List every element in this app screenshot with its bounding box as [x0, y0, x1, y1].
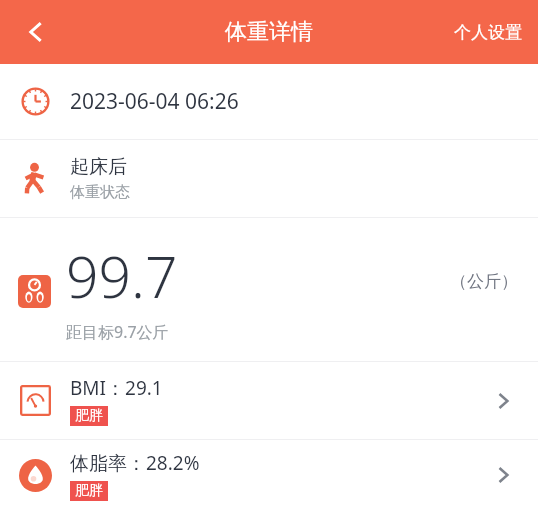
staticText: 体重状态	[70, 183, 130, 202]
staticText: 肥胖	[75, 407, 103, 425]
button[interactable]: 2023-06-04 06:26	[0, 64, 538, 139]
staticText: 体脂率：28.2%	[70, 450, 200, 476]
staticText: 距目标9.7公斤	[66, 321, 169, 343]
staticText: BMI：29.1	[70, 375, 163, 401]
button[interactable]: 起床后	[0, 140, 538, 217]
staticText: 99.7	[66, 237, 178, 315]
button[interactable]: Back	[8, 4, 64, 60]
staticText: 个人设置	[454, 22, 522, 43]
button[interactable]: 个人设置	[438, 10, 538, 55]
button[interactable]: BMI：29.1	[0, 362, 538, 439]
staticText: 肥胖	[75, 482, 103, 500]
staticText: （公斤）	[450, 271, 518, 292]
button[interactable]: 99.7	[0, 218, 538, 361]
staticText: 起床后	[70, 155, 127, 179]
button[interactable]: 体脂率：28.2%	[0, 440, 538, 510]
staticText: 2023-06-04 06:26	[70, 87, 239, 116]
staticText: 体重详情	[225, 18, 313, 46]
